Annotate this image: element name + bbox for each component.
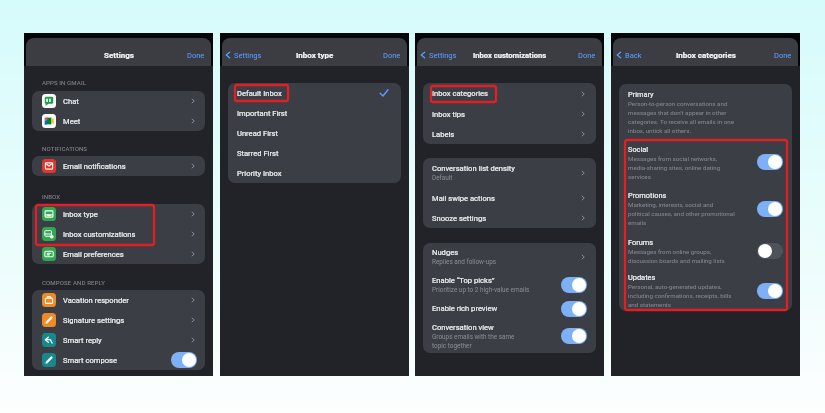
staticText: Unread First bbox=[237, 129, 278, 138]
staticText: Settings bbox=[429, 51, 457, 60]
button[interactable]: Promotions bbox=[619, 185, 792, 232]
staticText: Signature settings bbox=[63, 316, 125, 325]
staticText: Messages from social networks, media-sha… bbox=[628, 155, 721, 180]
staticText: Replies and follow-ups bbox=[432, 258, 497, 266]
staticText: Nudges bbox=[432, 248, 459, 257]
staticText: Priority Inbox bbox=[237, 169, 282, 178]
staticText: NOTIFICATIONS bbox=[42, 145, 88, 152]
button[interactable]: Nudges bbox=[423, 243, 596, 271]
button[interactable]: Email preferences bbox=[32, 244, 205, 264]
staticText: Social bbox=[628, 145, 649, 154]
staticText: Inbox customizations bbox=[473, 51, 547, 60]
button[interactable]: Snooze settings bbox=[423, 208, 596, 228]
button[interactable]: Labels bbox=[423, 124, 596, 144]
staticText: Inbox categories bbox=[432, 89, 489, 98]
button[interactable]: Conversation list density bbox=[423, 158, 596, 188]
button[interactable]: Toggle on bbox=[757, 154, 783, 170]
button[interactable]: Conversation view bbox=[423, 318, 596, 353]
staticText: Inbox tips bbox=[432, 110, 465, 119]
staticText: Conversation list density bbox=[432, 164, 515, 173]
staticText: Settings bbox=[104, 51, 134, 60]
button[interactable]: Done bbox=[572, 45, 602, 65]
button[interactable]: Inbox tips bbox=[423, 104, 596, 124]
button[interactable]: Enable rich preview bbox=[423, 299, 596, 318]
staticText: Default Inbox bbox=[237, 89, 282, 98]
button[interactable]: Updates bbox=[619, 270, 792, 311]
button[interactable]: Done bbox=[181, 45, 211, 65]
staticText: Starred First bbox=[237, 149, 279, 158]
button[interactable]: Mail swipe actions bbox=[423, 188, 596, 208]
button[interactable]: Inbox categories bbox=[423, 83, 596, 104]
button[interactable]: Unread First bbox=[228, 123, 401, 143]
button[interactable]: Toggle on bbox=[561, 328, 587, 344]
button[interactable]: Email notifications bbox=[32, 156, 205, 176]
button[interactable]: Settings bbox=[222, 45, 266, 65]
button[interactable]: Toggle on bbox=[757, 283, 783, 299]
staticText: Done bbox=[774, 51, 792, 60]
button[interactable]: Vacation responder bbox=[32, 290, 205, 310]
staticText: Forums bbox=[628, 238, 654, 247]
staticText: Vacation responder bbox=[63, 296, 129, 305]
staticText: Marketing, interests, social and politic… bbox=[628, 201, 735, 226]
staticText: Inbox type bbox=[63, 210, 98, 219]
button[interactable]: Toggle on bbox=[561, 301, 587, 317]
staticText: Prioritize up to 2 high-value emails bbox=[432, 286, 530, 294]
staticText: Inbox customizations bbox=[63, 230, 136, 239]
button[interactable]: Toggle on bbox=[561, 277, 587, 293]
button[interactable]: Smart reply bbox=[32, 330, 205, 350]
button[interactable]: Priority Inbox bbox=[228, 163, 401, 183]
staticText: Email preferences bbox=[63, 250, 124, 259]
staticText: Labels bbox=[432, 130, 455, 139]
staticText: Conversation view bbox=[432, 323, 494, 332]
staticText: Back bbox=[625, 51, 642, 60]
staticText: APPS IN GMAIL bbox=[42, 79, 87, 86]
button[interactable]: Back bbox=[613, 45, 646, 65]
button[interactable]: Social bbox=[619, 139, 792, 185]
staticText: Enable “Top picks” bbox=[432, 276, 495, 285]
button[interactable]: Important First bbox=[228, 103, 401, 123]
button[interactable]: Forums bbox=[619, 232, 792, 270]
staticText: Smart reply bbox=[63, 336, 102, 345]
staticText: Done bbox=[383, 51, 401, 60]
button[interactable]: Toggle on bbox=[757, 201, 783, 217]
button[interactable]: Inbox customizations bbox=[32, 224, 205, 244]
staticText: Primary bbox=[628, 90, 654, 99]
staticText: Settings bbox=[234, 51, 262, 60]
staticText: Smart compose bbox=[63, 356, 117, 365]
button[interactable]: Signature settings bbox=[32, 310, 205, 330]
staticText: Inbox type bbox=[296, 51, 334, 60]
staticText: INBOX bbox=[42, 193, 61, 200]
button[interactable]: Default Inbox bbox=[228, 83, 401, 103]
staticText: Done bbox=[578, 51, 596, 60]
button[interactable]: Smart compose bbox=[32, 350, 205, 370]
staticText: Inbox categories bbox=[676, 51, 736, 60]
button[interactable]: Toggle off bbox=[757, 243, 783, 259]
staticText: Done bbox=[187, 51, 205, 60]
button[interactable]: Toggle on bbox=[171, 352, 197, 368]
staticText: Person-to-person conversations and messa… bbox=[628, 100, 735, 134]
staticText: Promotions bbox=[628, 191, 667, 200]
staticText: COMPOSE AND REPLY bbox=[42, 279, 105, 286]
staticText: Chat bbox=[63, 97, 79, 106]
button[interactable]: Done bbox=[768, 45, 798, 65]
staticText: Default bbox=[432, 174, 453, 182]
staticText: Personal, auto-generated updates, includ… bbox=[628, 283, 732, 308]
staticText: Groups emails with the same topic togeth… bbox=[432, 333, 515, 349]
button[interactable]: Done bbox=[377, 45, 407, 65]
staticText: Enable rich preview bbox=[432, 304, 498, 313]
button[interactable]: Chat bbox=[32, 91, 205, 111]
staticText: Snooze settings bbox=[432, 214, 487, 223]
button[interactable]: Primary bbox=[619, 84, 792, 139]
staticText: Mail swipe actions bbox=[432, 194, 495, 203]
staticText: Important First bbox=[237, 109, 288, 118]
staticText: Meet bbox=[63, 117, 81, 126]
button[interactable]: Enable “Top picks” bbox=[423, 271, 596, 299]
button[interactable]: Meet bbox=[32, 111, 205, 131]
button[interactable]: Starred First bbox=[228, 143, 401, 163]
staticText: Updates bbox=[628, 273, 656, 282]
staticText: Email notifications bbox=[63, 162, 126, 171]
button[interactable]: Inbox type bbox=[32, 204, 205, 224]
staticText: Messages from online groups, discussion … bbox=[628, 248, 725, 264]
button[interactable]: Settings bbox=[417, 45, 461, 65]
